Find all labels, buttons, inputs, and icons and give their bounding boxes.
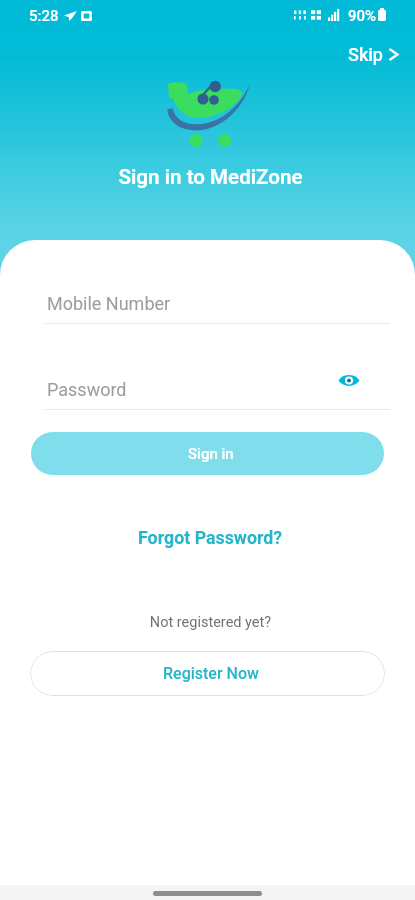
staticText: Mobile Number <box>47 293 171 314</box>
staticText: Not registered yet? <box>3 614 415 631</box>
button[interactable]: Password <box>45 377 390 410</box>
button[interactable]: Forgot Password? <box>130 523 291 552</box>
staticText: 90% <box>348 7 377 25</box>
button[interactable]: Show password <box>335 366 363 394</box>
staticText: Skip <box>348 44 383 65</box>
staticText: Sign in <box>188 445 234 463</box>
staticText: Password <box>47 379 127 400</box>
staticText: Register Now <box>163 664 259 683</box>
button[interactable]: Skip <box>338 40 410 69</box>
staticText: 5:28 <box>29 7 59 25</box>
button[interactable]: Mobile Number <box>45 291 390 324</box>
staticText: Sign in to MediZone <box>3 165 415 189</box>
button[interactable]: Sign in <box>31 432 384 475</box>
button[interactable]: Register Now <box>30 651 385 696</box>
